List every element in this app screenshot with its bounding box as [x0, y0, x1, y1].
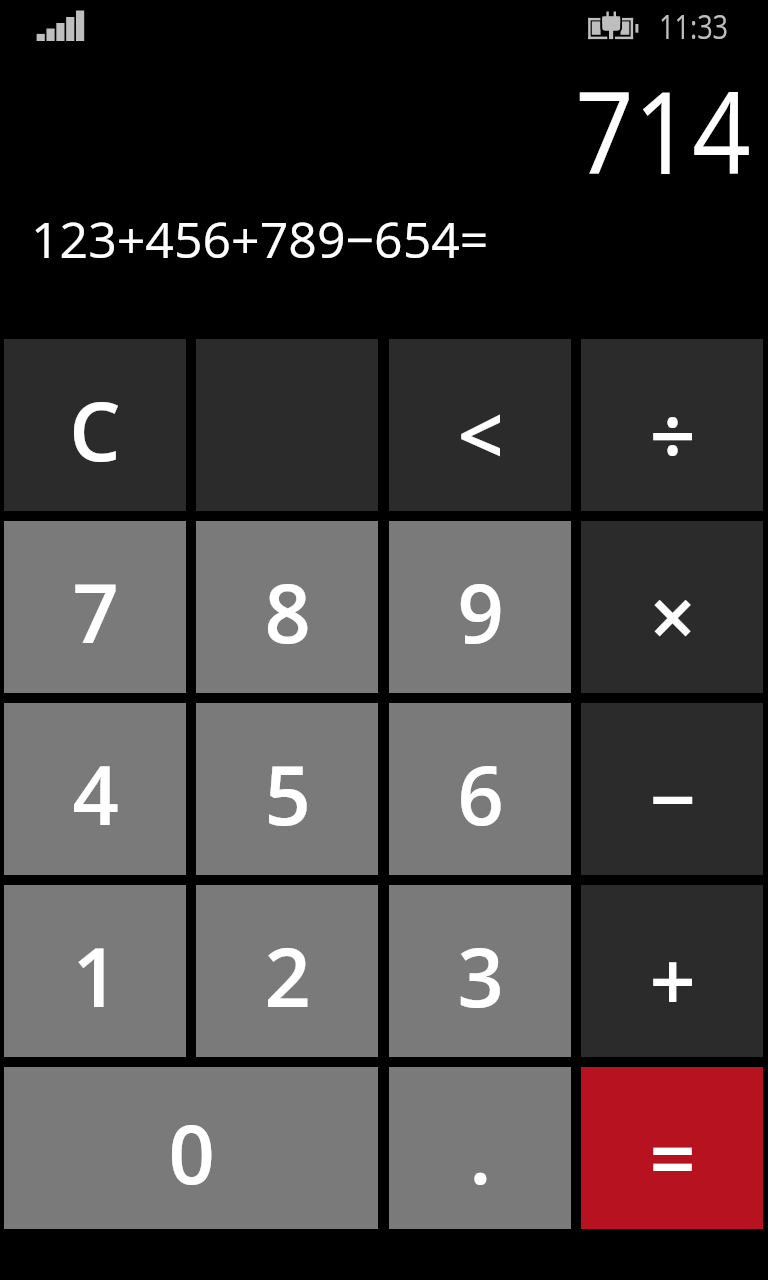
- staticText: ×: [649, 560, 696, 670]
- staticText: 8: [264, 556, 311, 666]
- button[interactable]: Five: [196, 703, 378, 875]
- staticText: 6: [457, 738, 504, 848]
- button[interactable]: Backspace: [389, 339, 571, 511]
- button[interactable]: Zero: [4, 1067, 378, 1229]
- staticText: 4: [72, 738, 119, 848]
- staticText: 7: [72, 556, 119, 666]
- button[interactable]: Decimal point: [389, 1067, 571, 1229]
- button[interactable]: Four: [4, 703, 186, 875]
- staticText: 0: [168, 1097, 215, 1207]
- staticText: 9: [457, 556, 504, 666]
- staticText: 2: [264, 920, 311, 1030]
- staticText: =: [649, 1101, 696, 1211]
- button[interactable]: Seven: [4, 521, 186, 693]
- staticText: C: [69, 374, 121, 484]
- staticText: 714: [575, 52, 751, 207]
- button[interactable]: Minus: [581, 703, 763, 875]
- staticText: 5: [264, 738, 311, 848]
- staticText: .: [469, 1097, 492, 1207]
- staticText: ÷: [649, 378, 696, 488]
- staticText: −: [649, 742, 696, 852]
- button[interactable]: Two: [196, 885, 378, 1057]
- button[interactable]: One: [4, 885, 186, 1057]
- other: Signal strength: [30, 9, 90, 49]
- staticText: 11:33: [659, 4, 729, 49]
- button[interactable]: Nine: [389, 521, 571, 693]
- button[interactable]: Plus: [581, 885, 763, 1057]
- button[interactable]: Divide: [581, 339, 763, 511]
- button[interactable]: Multiply: [581, 521, 763, 693]
- staticText: <: [457, 378, 504, 488]
- button[interactable]: Equals: [581, 1067, 763, 1229]
- staticText: 123+456+789−654=: [31, 205, 489, 273]
- button[interactable]: Clear: [4, 339, 186, 511]
- staticText: +: [649, 924, 696, 1034]
- button[interactable]: Three: [389, 885, 571, 1057]
- button[interactable]: Six: [389, 703, 571, 875]
- other: Battery charging: [584, 4, 656, 48]
- staticText: 1: [72, 920, 119, 1030]
- staticText: 3: [457, 920, 504, 1030]
- button[interactable]: Eight: [196, 521, 378, 693]
